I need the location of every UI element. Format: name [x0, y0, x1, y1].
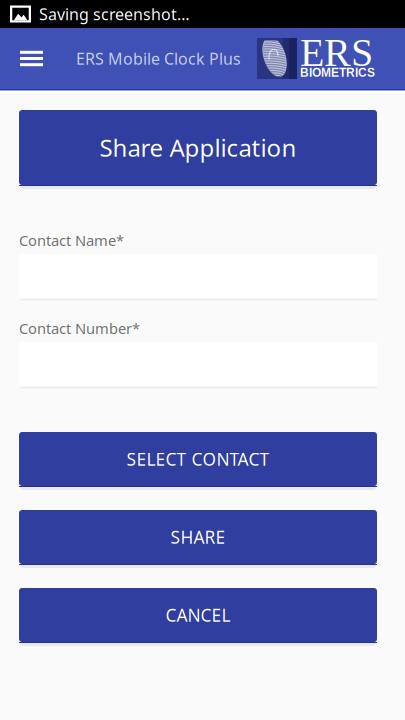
- staticText: SHARE: [170, 525, 225, 548]
- staticText: ERS Mobile Clock Plus: [76, 48, 241, 69]
- staticText: Share Application: [99, 132, 296, 163]
- button[interactable]: Open navigation menu: [0, 28, 63, 89]
- staticText: Contact Number*: [19, 318, 140, 338]
- staticText: CANCEL: [165, 603, 230, 626]
- staticText: Saving screenshot…: [39, 3, 190, 25]
- button[interactable]: SHARE: [19, 510, 377, 568]
- button[interactable]: SELECT CONTACT: [19, 432, 377, 490]
- staticText: SELECT CONTACT: [126, 447, 269, 470]
- staticText: Contact Name*: [19, 230, 124, 250]
- staticText: ERS: [300, 30, 373, 75]
- button[interactable]: CANCEL: [19, 588, 377, 646]
- staticText: BIOMETRICS: [300, 66, 375, 79]
- button[interactable]: Share Application: [19, 110, 377, 189]
